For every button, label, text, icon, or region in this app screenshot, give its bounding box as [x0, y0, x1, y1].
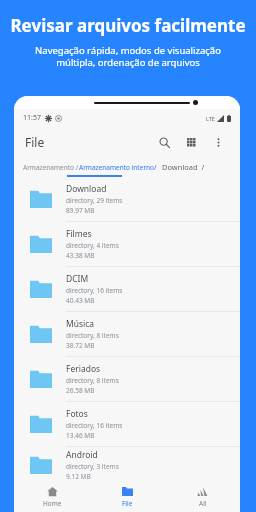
button[interactable]: Feriados	[14, 357, 240, 402]
staticText: Filmes	[66, 228, 92, 240]
button[interactable]: Search	[153, 131, 175, 153]
staticText: Revisar arquivos facilmente	[10, 14, 246, 37]
button[interactable]: Download	[14, 177, 240, 222]
staticText: Navegação rápida, modos de visualização …	[35, 44, 221, 69]
staticText: 43.38 MB	[66, 251, 95, 260]
staticText: Android	[66, 449, 98, 461]
staticText: File	[25, 134, 45, 150]
button[interactable]: Fotos	[14, 402, 240, 447]
staticText: directory, 8 items	[66, 376, 119, 385]
staticText: directory, 3 items	[66, 462, 119, 471]
staticText: Música	[66, 318, 95, 330]
staticText: LTE	[206, 115, 215, 122]
staticText: Armazenamento interno/	[79, 163, 157, 172]
staticText: Feriados	[66, 363, 101, 375]
button[interactable]: DCIM	[14, 267, 240, 312]
staticText: 11:57	[23, 113, 41, 123]
button[interactable]: Filmes	[14, 222, 240, 267]
button[interactable]: File	[90, 482, 165, 512]
button[interactable]: Android	[14, 447, 240, 482]
staticText: All	[199, 499, 207, 508]
staticText: 38.72 MB	[66, 341, 95, 350]
staticText: DCIM	[66, 273, 89, 285]
staticText: 40.43 MB	[66, 296, 95, 305]
button[interactable]: Armazenamento interno/	[79, 163, 157, 172]
staticText: 89.97 MB	[66, 206, 95, 215]
staticText: Home	[43, 499, 62, 508]
staticText: Armazenamento /	[23, 163, 79, 172]
staticText: Download /	[162, 162, 205, 172]
staticText: directory, 16 items	[66, 421, 123, 430]
button[interactable]: All	[165, 482, 240, 512]
button[interactable]: Home	[14, 482, 90, 512]
staticText: 13.46 MB	[66, 431, 95, 440]
staticText: 9.12 MB	[66, 472, 91, 481]
button[interactable]: Música	[14, 312, 240, 357]
staticText: directory, 8 items	[66, 331, 119, 340]
button[interactable]: More options	[207, 131, 229, 153]
staticText: directory, 16 items	[66, 286, 123, 295]
staticText: Fotos	[66, 408, 88, 420]
staticText: Download	[66, 183, 107, 195]
staticText: 26.58 MB	[66, 386, 95, 395]
staticText: File	[122, 499, 133, 508]
staticText: directory, 29 items	[66, 196, 123, 205]
staticText: directory, 4 items	[66, 241, 119, 250]
button[interactable]: Grid view	[180, 131, 202, 153]
